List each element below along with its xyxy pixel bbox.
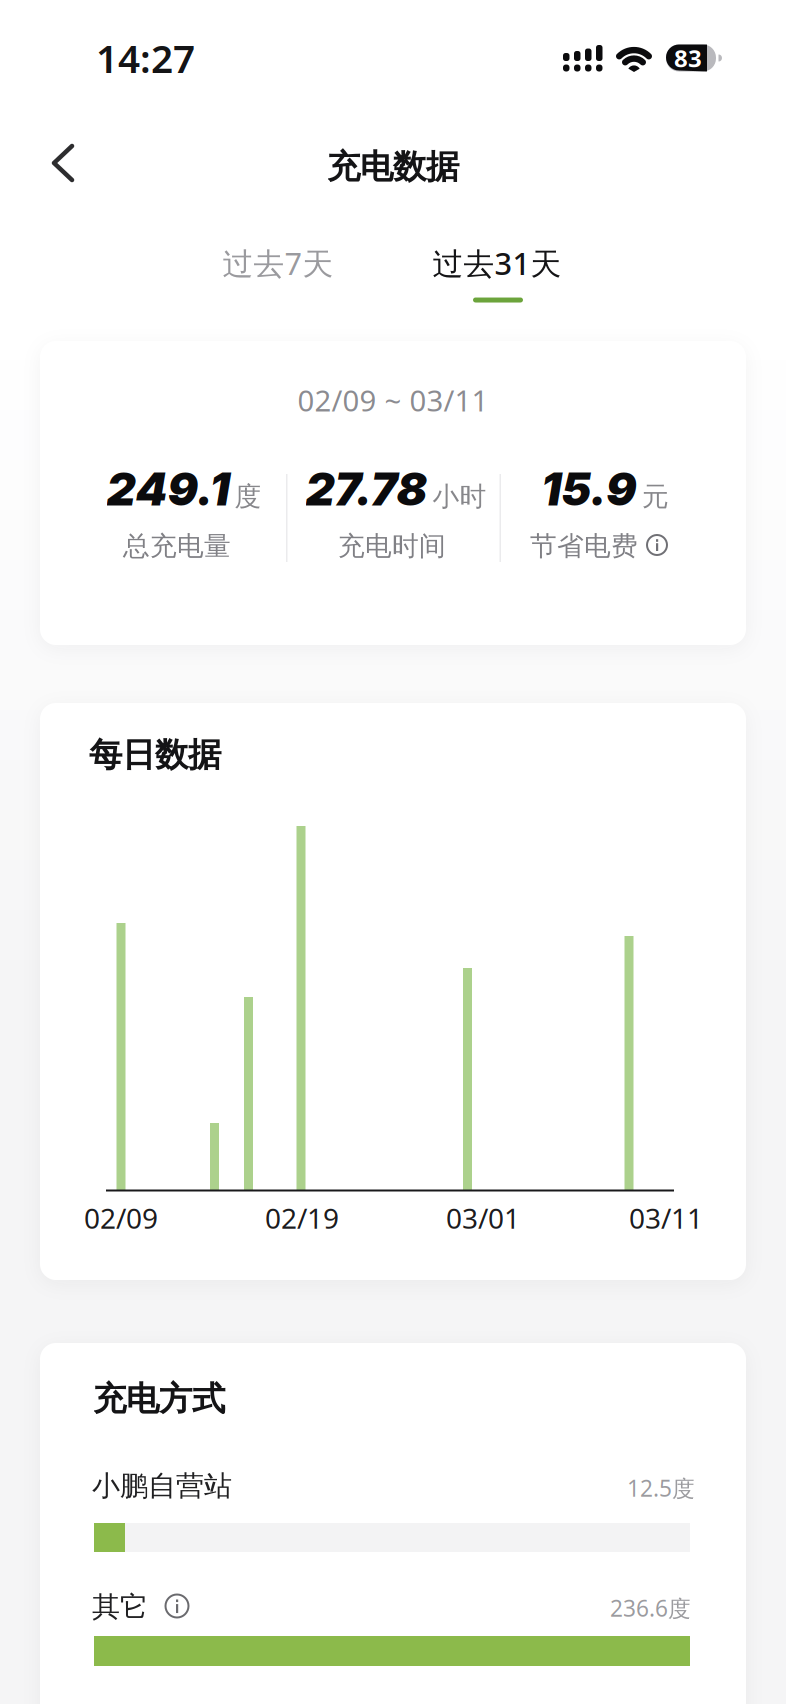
staticText: 其它 [92, 1590, 148, 1624]
staticText: 每日数据 [89, 734, 221, 775]
staticText: 元 [642, 480, 669, 513]
staticText: 03/01 [446, 1199, 520, 1237]
button[interactable]: 过去31天 [432, 243, 561, 283]
staticText: 充电时间 [338, 530, 446, 562]
button[interactable] [646, 534, 668, 556]
staticText: 14:27 [96, 32, 195, 84]
staticText: 02/09 [84, 1199, 158, 1237]
staticText: 总充电量 [123, 530, 231, 562]
button[interactable] [164, 1593, 189, 1618]
staticText: 02/19 [265, 1199, 339, 1237]
staticText: 02/09 ~ 03/11 [297, 380, 488, 419]
staticText: 充电数据 [327, 146, 459, 187]
staticText: 过去7天 [222, 243, 333, 283]
staticText: 15.9 [541, 462, 637, 516]
staticText: 249.1 [106, 462, 229, 516]
staticText: 度 [234, 480, 261, 513]
staticText: 小时 [432, 480, 486, 513]
staticText: 03/11 [629, 1199, 703, 1237]
staticText: 小鹏自营站 [92, 1469, 232, 1503]
staticText: 充电方式 [93, 1378, 225, 1419]
staticText: 过去31天 [432, 243, 561, 283]
staticText: 27.78 [305, 462, 427, 516]
staticText: 12.5度 [627, 1473, 695, 1503]
staticText: 236.6度 [610, 1593, 691, 1623]
button[interactable] [45, 141, 81, 185]
staticText: 节省电费 [530, 530, 638, 562]
staticText: 83 [674, 42, 702, 74]
button[interactable]: 过去7天 [222, 243, 333, 283]
